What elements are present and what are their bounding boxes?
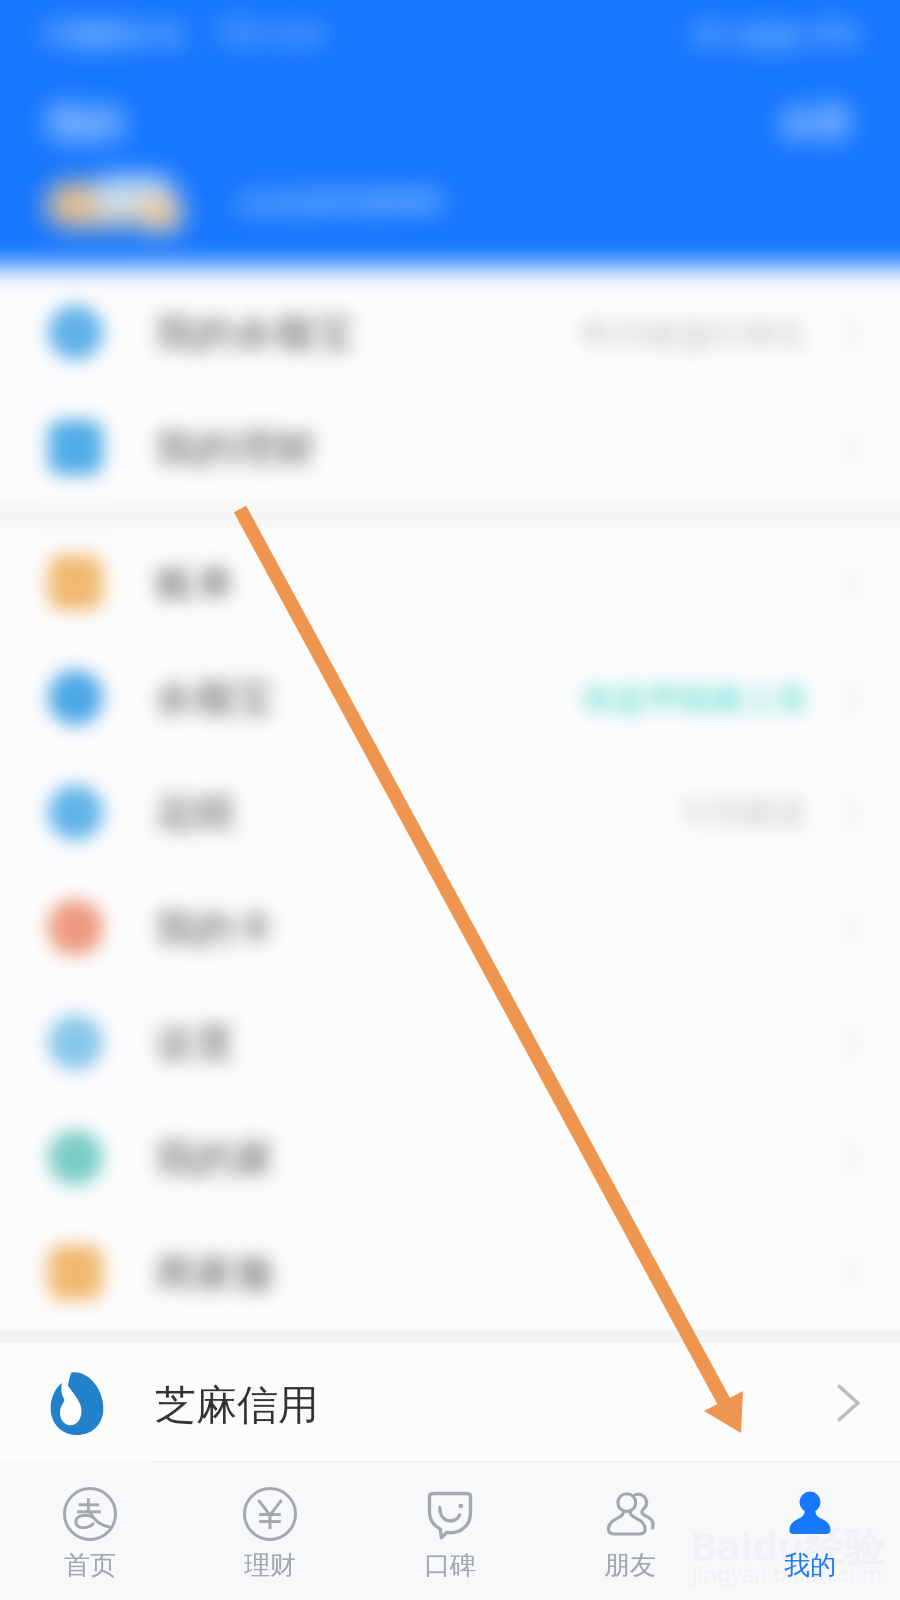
staticText: 可用额度	[679, 793, 807, 833]
button[interactable]: 花呗	[0, 755, 900, 870]
button[interactable]: 我的家	[0, 1100, 900, 1215]
staticText: 理财	[244, 1549, 296, 1582]
staticText: 我的余额宝	[155, 308, 355, 358]
staticText: 我的理财	[155, 423, 315, 473]
staticText: 昨日收益0.08元	[583, 311, 807, 355]
button[interactable]: 理财	[180, 1462, 360, 1600]
button[interactable]: 商家服	[0, 1215, 900, 1330]
staticText: 朋友	[604, 1549, 656, 1582]
button[interactable]: 我的	[720, 1462, 900, 1600]
staticText: jingyan.baidu.com	[692, 1558, 883, 1588]
staticText: 我的	[46, 98, 126, 148]
button[interactable]: 我的卡	[0, 870, 900, 985]
staticText: 口碑	[424, 1549, 476, 1582]
staticText: 商家服	[155, 1248, 275, 1298]
staticText: 我的卡	[155, 903, 275, 953]
staticText: 芝麻信用	[155, 1380, 319, 1432]
staticText: 中国移动 4G 下午 3:14	[44, 16, 322, 50]
button[interactable]: 余额宝	[0, 640, 900, 755]
staticText: HD ▤ ▥ 87%	[692, 16, 858, 50]
staticText: 设置	[780, 100, 852, 145]
staticText: 余额宝	[155, 673, 275, 723]
staticText: 账单	[155, 558, 235, 608]
staticText: 设置	[155, 1018, 235, 1068]
staticText: 花呗	[155, 788, 235, 838]
staticText: 收益率稳健上涨	[583, 678, 807, 718]
button[interactable]: 朋友	[540, 1462, 720, 1600]
button[interactable]: 设置	[0, 985, 900, 1100]
button[interactable]: 账单	[0, 525, 900, 640]
button[interactable]: 芝麻信用	[0, 1343, 900, 1462]
staticText: 我的	[784, 1549, 836, 1582]
button[interactable]: 我的理财	[0, 390, 900, 505]
staticText: Baidu经验	[690, 1518, 884, 1573]
staticText: 点击这里完善资料	[236, 186, 444, 219]
button[interactable]: 我的余额宝	[0, 275, 900, 390]
button[interactable]: 口碑	[360, 1462, 540, 1600]
button[interactable]: 首页	[0, 1462, 180, 1600]
staticText: 我的家	[155, 1133, 275, 1183]
staticText: 首页	[64, 1549, 116, 1582]
